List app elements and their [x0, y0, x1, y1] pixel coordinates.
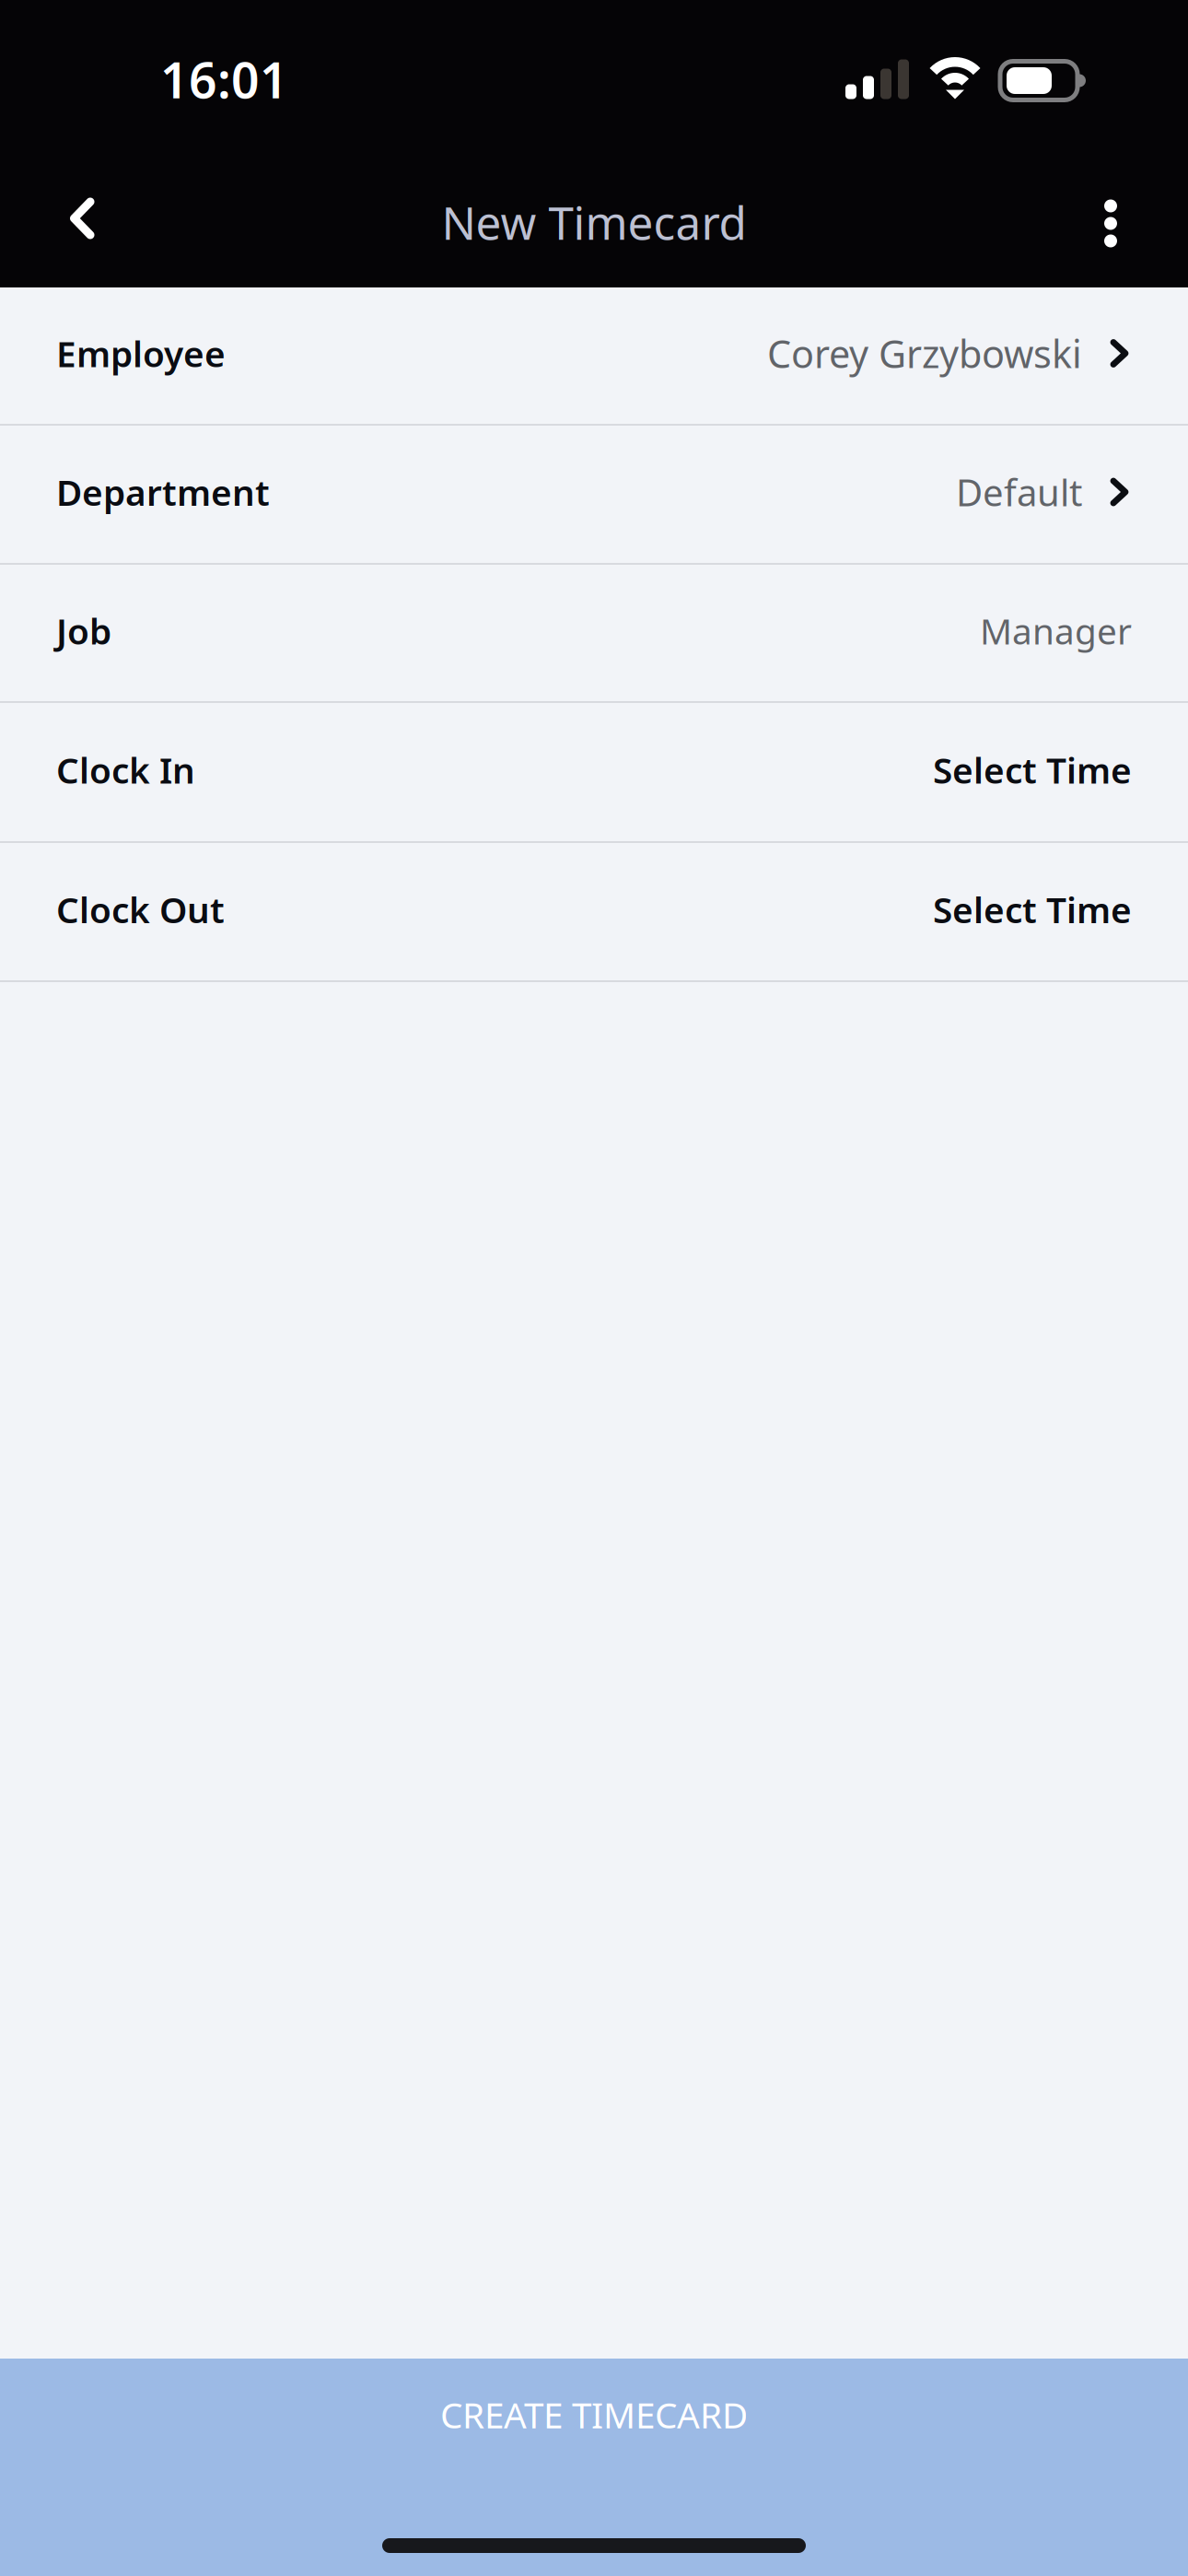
- staticText: New Timecard: [442, 192, 746, 252]
- button[interactable]: Clock In: [0, 703, 1188, 841]
- button[interactable]: CREATE TIMECARD: [0, 2359, 1188, 2576]
- button[interactable]: Job: [0, 565, 1188, 701]
- staticText: Default: [956, 467, 1082, 516]
- button[interactable]: Employee: [0, 287, 1188, 424]
- staticText: 16:01: [160, 47, 288, 112]
- staticText: CREATE TIMECARD: [440, 2391, 748, 2438]
- button[interactable]: Back: [0, 149, 181, 287]
- button[interactable]: Clock Out: [0, 843, 1188, 980]
- staticText: Corey Grzybowski: [767, 328, 1082, 379]
- button[interactable]: Department: [0, 426, 1188, 563]
- staticText: Select Time: [933, 886, 1132, 933]
- staticText: Clock In: [56, 746, 195, 793]
- staticText: Clock Out: [56, 886, 225, 933]
- staticText: Employee: [56, 330, 226, 377]
- staticText: Department: [56, 468, 270, 516]
- staticText: Job: [56, 607, 111, 654]
- staticText: Select Time: [933, 746, 1132, 793]
- button[interactable]: More options: [1007, 149, 1188, 287]
- staticText: Manager: [980, 607, 1132, 654]
